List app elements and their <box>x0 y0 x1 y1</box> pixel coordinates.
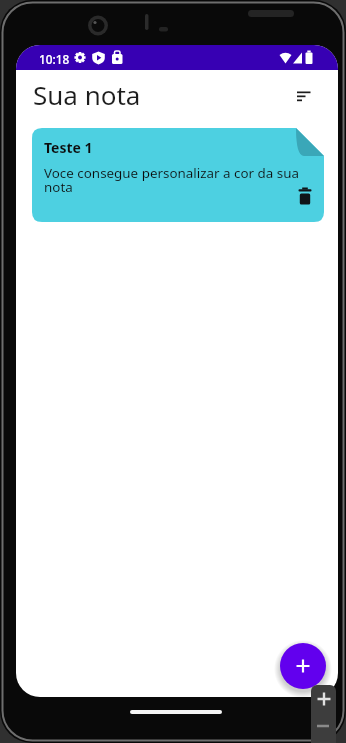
staticText: Teste 1 <box>44 138 93 157</box>
staticText: 10:18 <box>39 51 70 67</box>
button[interactable]: Teste 1 <box>32 128 324 222</box>
button[interactable] <box>280 643 326 689</box>
staticText: Voce consegue personalizar a cor da sua … <box>44 164 299 196</box>
button[interactable] <box>292 81 318 107</box>
button[interactable] <box>296 186 316 206</box>
staticText: Sua nota <box>33 77 141 112</box>
button[interactable] <box>311 685 336 743</box>
